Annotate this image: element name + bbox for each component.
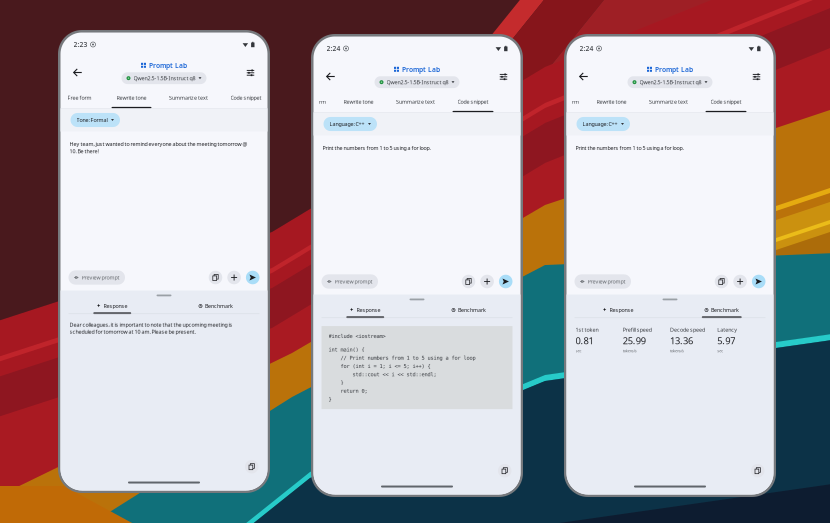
button[interactable]: Send (246, 271, 259, 284)
staticText: Latency (717, 326, 737, 333)
staticText: 1st token (575, 326, 598, 333)
staticText: Free form (67, 94, 91, 101)
staticText: Summarize text (649, 98, 688, 105)
button[interactable]: Benchmark (670, 306, 773, 318)
staticText: Preview prompt (334, 278, 372, 285)
button[interactable]: Summarize text (385, 92, 445, 112)
staticText: Prompt Lab (655, 65, 693, 74)
button[interactable]: Response (60, 302, 164, 314)
staticText: Qwen2.5-1.5B-Instruct q8 (639, 79, 701, 86)
button[interactable]: Back (321, 67, 339, 85)
button[interactable]: Copy prompt (462, 275, 475, 288)
staticText: Print the numbers from 1 to 5 using a fo… (575, 144, 683, 152)
button[interactable]: Add (733, 275, 747, 288)
button[interactable]: Preview prompt (68, 270, 125, 285)
button[interactable]: Response (313, 306, 417, 318)
staticText: Qwen2.5-1.5B-Instruct q8 (133, 75, 195, 82)
staticText: // Print numbers from 1 to 5 using a for… (328, 355, 475, 361)
staticText: rm (572, 98, 579, 105)
staticText: return 0; (328, 388, 367, 394)
button[interactable]: Back (574, 67, 592, 85)
staticText: Code snippet (710, 98, 741, 105)
staticText: Dear colleagues, it is important to note… (69, 321, 232, 335)
staticText: 2:24 (579, 44, 593, 53)
button[interactable]: Benchmark (417, 306, 520, 318)
staticText: Preview prompt (587, 278, 625, 285)
staticText: 2:23 (73, 40, 87, 49)
button[interactable]: Settings (747, 67, 765, 85)
staticText: sec (575, 348, 581, 353)
button[interactable]: rm (566, 92, 584, 112)
staticText: Benchmark (458, 306, 486, 313)
staticText: Hey team, just wanted to remind everyone… (69, 140, 247, 155)
button[interactable]: Code snippet (698, 92, 753, 112)
staticText: Code snippet (457, 98, 488, 105)
staticText: Prompt Lab (402, 65, 440, 74)
button[interactable]: Copy prompt (715, 275, 728, 288)
staticText: } (328, 396, 331, 402)
button[interactable]: Rewrite tone (584, 92, 638, 112)
button[interactable]: Settings (241, 63, 259, 81)
button[interactable]: Code snippet (445, 92, 500, 112)
button[interactable]: Rewrite tone (331, 92, 385, 112)
staticText: tokens/s (623, 348, 637, 353)
button[interactable]: Summarize text (158, 88, 218, 108)
staticText: } (328, 380, 343, 386)
staticText: Qwen2.5-1.5B-Instruct q8 (386, 79, 448, 86)
button[interactable]: Qwen2.5-1.5B-Instruct q8 (121, 72, 206, 84)
button[interactable]: Qwen2.5-1.5B-Instruct q8 (374, 76, 459, 88)
staticText: Summarize text (169, 94, 208, 101)
staticText: Rewrite tone (343, 98, 373, 105)
button[interactable]: Copy response (751, 464, 764, 477)
button[interactable]: rm (313, 92, 331, 112)
button[interactable]: Send (752, 275, 765, 288)
staticText: Summarize text (396, 98, 435, 105)
button[interactable]: Add (480, 275, 494, 288)
staticText: Prompt Lab (149, 61, 187, 70)
button[interactable]: Send (499, 275, 512, 288)
button[interactable]: Copy response (245, 460, 258, 473)
button[interactable]: Tone: Formal (70, 113, 120, 127)
button[interactable]: Language: C++ (576, 117, 630, 131)
staticText: Code snippet (230, 94, 261, 101)
button[interactable]: Response (566, 306, 670, 318)
button[interactable]: Copy prompt (209, 271, 222, 284)
staticText: 13.36 (670, 334, 693, 347)
staticText: rm (319, 98, 326, 105)
staticText: Benchmark (711, 306, 739, 313)
button[interactable]: Code snippet (218, 88, 273, 108)
staticText: 0.81 (575, 334, 593, 347)
staticText: Rewrite tone (596, 98, 626, 105)
button[interactable]: Benchmark (164, 302, 267, 314)
staticText: tokens/s (670, 348, 684, 353)
button[interactable]: Rewrite tone (104, 88, 158, 108)
staticText: Response (609, 306, 633, 313)
button[interactable]: Preview prompt (574, 274, 631, 289)
staticText: Prefill speed (623, 326, 652, 333)
staticText: #include <iostream> (328, 333, 385, 339)
button[interactable]: Language: C++ (323, 117, 377, 131)
staticText: Response (103, 302, 127, 309)
button[interactable]: Preview prompt (321, 274, 378, 289)
staticText: sec (717, 348, 723, 353)
button[interactable]: Copy response (498, 464, 511, 477)
staticText: std::cout << i << std::endl; (328, 371, 436, 377)
button[interactable]: Settings (494, 67, 512, 85)
staticText: Print the numbers from 1 to 5 using a fo… (322, 144, 430, 152)
staticText: int main() { (328, 347, 364, 353)
button[interactable]: Free form (54, 88, 104, 108)
button[interactable]: Add (227, 271, 241, 284)
staticText: Tone: Formal (76, 116, 107, 124)
staticText: Language: C++ (329, 120, 364, 128)
staticText: Benchmark (205, 302, 233, 309)
staticText: Language: C++ (582, 120, 617, 128)
staticText: Response (356, 306, 380, 313)
button[interactable]: Qwen2.5-1.5B-Instruct q8 (627, 76, 712, 88)
staticText: Rewrite tone (116, 94, 146, 101)
button[interactable]: Summarize text (638, 92, 698, 112)
button[interactable]: Back (68, 63, 86, 81)
staticText: for (int i = 1; i <= 5; i++) { (328, 363, 430, 369)
staticText: 2:24 (326, 44, 340, 53)
staticText: Preview prompt (81, 274, 119, 281)
